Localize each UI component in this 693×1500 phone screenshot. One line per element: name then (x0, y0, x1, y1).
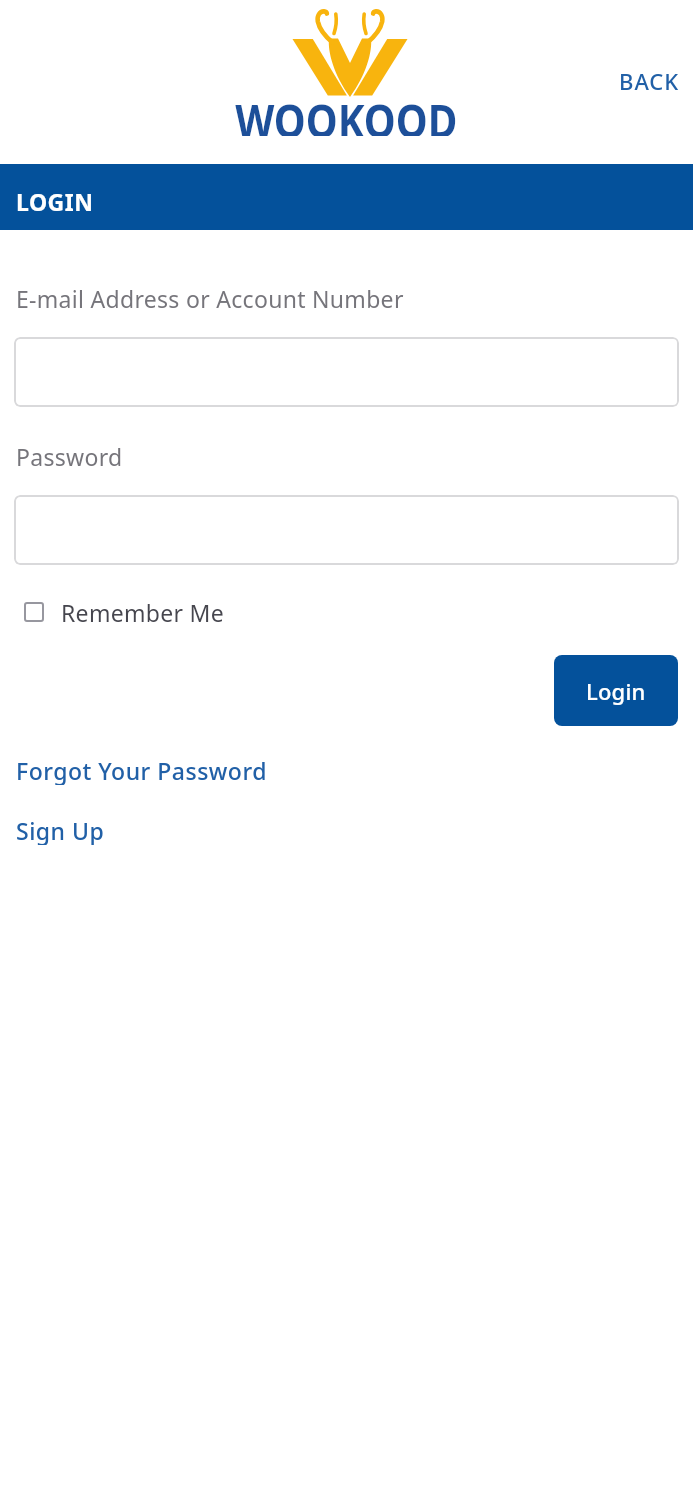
staticText: Forgot Your Password (16, 755, 267, 785)
button[interactable] (14, 495, 679, 565)
staticText: LOGIN (16, 186, 94, 217)
button[interactable]: Login (554, 655, 678, 726)
button[interactable] (14, 337, 679, 407)
staticText: E-mail Address or Account Number (16, 283, 404, 311)
button[interactable]: Sign Up (16, 815, 105, 845)
button[interactable]: Remember Me (14, 592, 224, 632)
button[interactable]: Forgot Your Password (16, 755, 267, 785)
staticText: WOOKOOD (235, 88, 458, 136)
staticText: Login (586, 676, 646, 706)
staticText: BACK (619, 66, 680, 96)
button[interactable]: BACK (619, 66, 680, 96)
staticText: Sign Up (16, 815, 105, 845)
staticText: Remember Me (61, 597, 224, 628)
staticText: Password (16, 441, 123, 469)
